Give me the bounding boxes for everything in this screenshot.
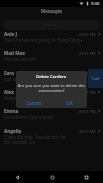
- staticText: OK: [66, 100, 73, 106]
- button[interactable]: Back: [0, 171, 35, 183]
- staticText: 09:25 PM: [79, 90, 96, 95]
- staticText: Cancel: [26, 100, 41, 106]
- staticText: Sometimes I get a good: [4, 114, 54, 120]
- staticText: 9:38: [91, 1, 100, 7]
- staticText: Anie J: [4, 31, 17, 37]
- button[interactable]: OK: [51, 97, 87, 108]
- button[interactable]: Cancel: [16, 97, 51, 108]
- staticText: 09:25 PM: [79, 71, 96, 76]
- staticText: Are you sure you want to delete this con…: [17, 83, 86, 94]
- button[interactable]: Recents: [69, 171, 103, 183]
- staticText: Emma: [4, 108, 19, 114]
- staticText: Angella: [4, 128, 22, 134]
- staticText: Are you see me: [4, 56, 36, 62]
- staticText: Call: [92, 76, 100, 82]
- button[interactable]: Home: [35, 171, 69, 183]
- staticText: 09:25 PM: [79, 51, 96, 56]
- staticText: Just tell me when: [4, 76, 40, 82]
- staticText: Andrea will be there: [4, 95, 46, 101]
- staticText: Delete Confirm: [36, 74, 67, 80]
- button[interactable]: Call: [88, 69, 103, 88]
- button[interactable]: Alex: [0, 88, 103, 107]
- staticText: Alex: [4, 89, 14, 95]
- button[interactable]: Emma: [0, 107, 103, 126]
- button[interactable]: Angella: [0, 127, 103, 151]
- staticText: 09:19 PM: [79, 129, 96, 134]
- button[interactable]: Mad Max: [0, 49, 103, 68]
- staticText: Messages: [41, 8, 63, 14]
- button[interactable]: Sara: [0, 69, 103, 88]
- button[interactable]: Anie J: [0, 30, 103, 49]
- staticText: 09:25 PM: [79, 32, 96, 37]
- staticText: The time we are going to Hong Kong: [4, 37, 80, 43]
- staticText: Sara: [4, 70, 14, 76]
- staticText: Mad Max: [4, 50, 25, 56]
- staticText: 09:25 PM: [79, 109, 96, 114]
- staticText: If you did that, I would pay for the sou…: [4, 134, 68, 145]
